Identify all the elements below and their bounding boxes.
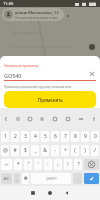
staticText: QWERTY: [46, 177, 57, 181]
staticText: Уточните детали входа в дом: [15, 16, 58, 20]
button[interactable]: *: [14, 159, 22, 170]
button[interactable]: /: [91, 145, 99, 156]
staticText: Применить: [38, 97, 63, 103]
staticText: ?: [77, 161, 80, 168]
staticText: улица Мясницкая, 13: [15, 10, 59, 16]
button[interactable]: ": [24, 159, 32, 170]
staticText: Уточните телефон получателя: [10, 44, 72, 50]
staticText: &: [43, 147, 47, 154]
staticText: .: [77, 176, 79, 182]
staticText: 11:50: [3, 1, 14, 6]
button[interactable]: -: [51, 145, 59, 156]
button[interactable]: Настройки: [36, 108, 48, 130]
button[interactable]: Профиль: [89, 44, 95, 50]
button[interactable]: Микрофон: [87, 108, 100, 130]
button[interactable]: Буфер: [48, 108, 61, 130]
button[interactable]: 7: [61, 131, 69, 142]
staticText: Неверный промокод: [4, 63, 39, 68]
staticText: 3: [24, 133, 27, 140]
button[interactable]: Очистить: [87, 69, 96, 78]
button[interactable]: Перевод: [61, 108, 74, 130]
button[interactable]: _: [31, 145, 39, 156]
button[interactable]: Ввод: [84, 173, 99, 184]
button[interactable]: 6: [51, 131, 59, 142]
button[interactable]: Домой: [43, 186, 57, 200]
staticText: *: [17, 161, 20, 168]
staticText: -: [54, 147, 56, 154]
button[interactable]: =\<: [1, 159, 12, 170]
staticText: 9: [84, 133, 87, 140]
button[interactable]: 2: [11, 131, 19, 142]
button[interactable]: :: [44, 159, 52, 170]
staticText: (: [74, 147, 76, 154]
staticText: ): [84, 147, 86, 154]
staticText: ': [37, 161, 39, 168]
button[interactable]: Назад: [60, 186, 74, 200]
button[interactable]: улица Мясницкая, 13: [2, 8, 64, 21]
button[interactable]: Ещё: [74, 108, 87, 130]
staticText: _: [34, 147, 37, 154]
button[interactable]: $: [21, 145, 29, 156]
staticText: ;: [57, 161, 59, 168]
button[interactable]: &: [41, 145, 49, 156]
staticText: 0: [94, 133, 97, 140]
button[interactable]: GIF: [24, 108, 36, 130]
button[interactable]: Эмодзи: [22, 173, 29, 184]
button[interactable]: 0: [91, 131, 99, 142]
staticText: Куда поедете?: [12, 30, 41, 36]
button[interactable]: Назад: [0, 108, 12, 130]
staticText: :: [47, 161, 49, 168]
staticText: !: [67, 161, 69, 168]
staticText: =\<: [4, 163, 9, 167]
staticText: GO540: [4, 72, 22, 79]
button[interactable]: ABC: [1, 173, 12, 184]
button[interactable]: 3: [21, 131, 29, 142]
staticText: 7: [64, 133, 67, 140]
staticText: ,: [16, 176, 18, 182]
button[interactable]: ': [34, 159, 42, 170]
button[interactable]: ?: [74, 159, 82, 170]
button[interactable]: QWERTY: [31, 173, 71, 184]
staticText: #: [13, 147, 17, 154]
button[interactable]: 8: [71, 131, 79, 142]
button[interactable]: Применить: [4, 91, 96, 108]
button[interactable]: .: [73, 173, 82, 184]
button[interactable]: @: [1, 145, 9, 156]
button[interactable]: !: [64, 159, 72, 170]
staticText: $: [24, 147, 27, 154]
staticText: 2: [14, 133, 17, 140]
staticText: 1: [4, 133, 7, 140]
staticText: +: [64, 147, 67, 154]
staticText: 4: [34, 133, 37, 140]
button[interactable]: ,: [14, 173, 20, 184]
staticText: 8: [74, 133, 77, 140]
button[interactable]: (: [71, 145, 79, 156]
staticText: @: [3, 147, 8, 154]
staticText: 5: [44, 133, 47, 140]
button[interactable]: 5: [41, 131, 49, 142]
button[interactable]: 9: [81, 131, 89, 142]
button[interactable]: Обзор: [26, 186, 40, 200]
button[interactable]: ): [81, 145, 89, 156]
staticText: Промокод принадлежит другому пользовател…: [4, 85, 72, 89]
staticText: /: [94, 147, 96, 154]
button[interactable]: 1: [1, 131, 9, 142]
button[interactable]: Удалить: [84, 159, 99, 170]
button[interactable]: Стикеры: [12, 108, 24, 130]
button[interactable]: +: [61, 145, 69, 156]
staticText: 6: [54, 133, 57, 140]
staticText: ABC: [3, 177, 10, 181]
button[interactable]: #: [11, 145, 19, 156]
button[interactable]: 4: [31, 131, 39, 142]
staticText: ": [27, 161, 30, 168]
button[interactable]: ;: [54, 159, 62, 170]
